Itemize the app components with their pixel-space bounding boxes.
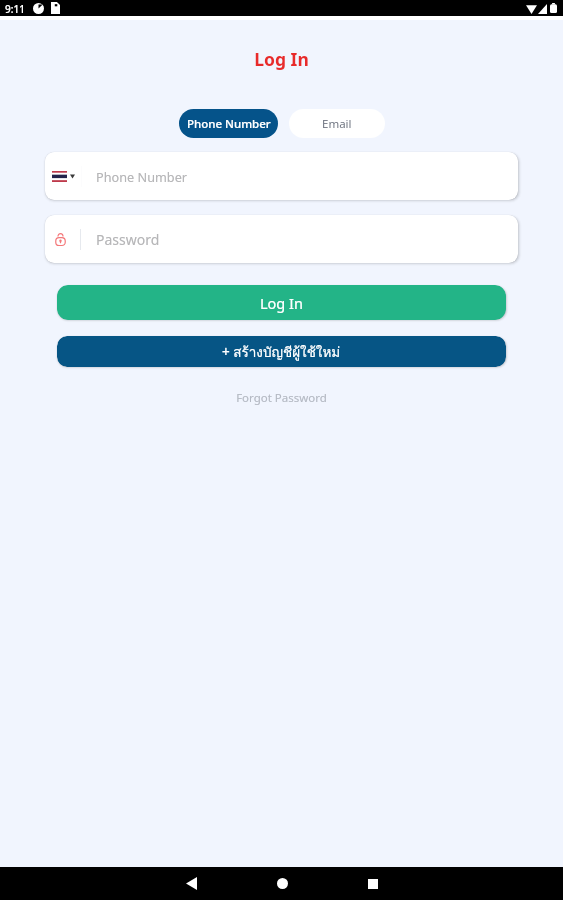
staticText: Password <box>96 230 160 249</box>
button[interactable]: Home <box>260 867 304 900</box>
button[interactable]: + สร้างบัญชีผู้ใช้ใหม่ <box>57 336 506 367</box>
staticText: Log In <box>260 293 303 313</box>
staticText: Phone Number <box>96 168 188 185</box>
button[interactable]: Phone Number <box>179 109 278 138</box>
button[interactable]: Select country code, Thailand <box>45 152 81 200</box>
button[interactable]: Recent apps <box>351 867 395 900</box>
staticText: Email <box>322 116 352 132</box>
staticText: Phone Number <box>187 116 271 132</box>
button[interactable]: Select country code, Thailand <box>45 152 518 200</box>
button[interactable]: Log In <box>57 285 506 320</box>
button[interactable]: Email <box>289 109 385 138</box>
staticText: Log In <box>254 47 309 71</box>
button[interactable]: Back <box>169 867 213 900</box>
button[interactable]: Forgot Password <box>236 390 327 406</box>
staticText: + สร้างบัญชีผู้ใช้ใหม่ <box>222 341 341 362</box>
button[interactable]: Password <box>45 215 518 263</box>
staticText: 9:11 <box>5 2 25 16</box>
